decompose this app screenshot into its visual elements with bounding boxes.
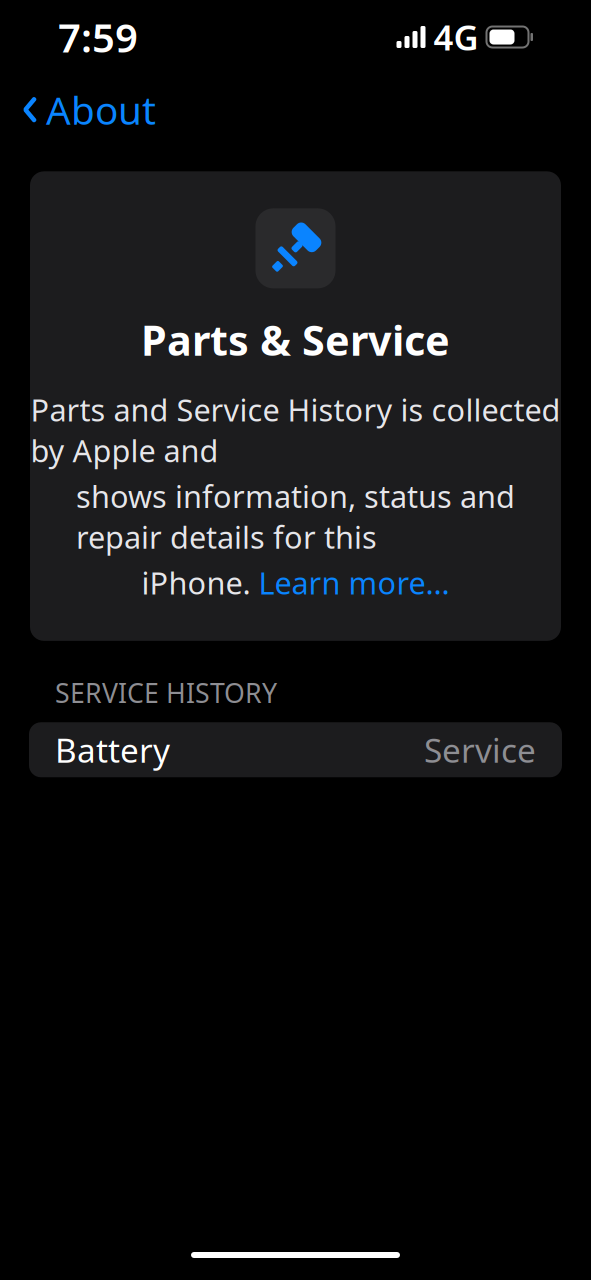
button[interactable]: Battery (29, 722, 562, 777)
staticText: Parts and Service History is collected b… (30, 389, 560, 471)
button[interactable]: Learn more... (258, 562, 449, 603)
staticText: shows information, status and repair det… (76, 476, 515, 557)
staticText: iPhone. (141, 562, 258, 603)
staticText: Service (424, 728, 536, 772)
staticText: Parts & Service (141, 312, 450, 367)
staticText: Learn more... (258, 562, 449, 603)
staticText: 7:59 (58, 10, 138, 63)
staticText: About (46, 84, 156, 135)
staticText: SERVICE HISTORY (55, 675, 277, 710)
button[interactable]: About (6, 74, 156, 145)
staticText: 4G (433, 14, 478, 60)
staticText: Battery (55, 728, 170, 772)
